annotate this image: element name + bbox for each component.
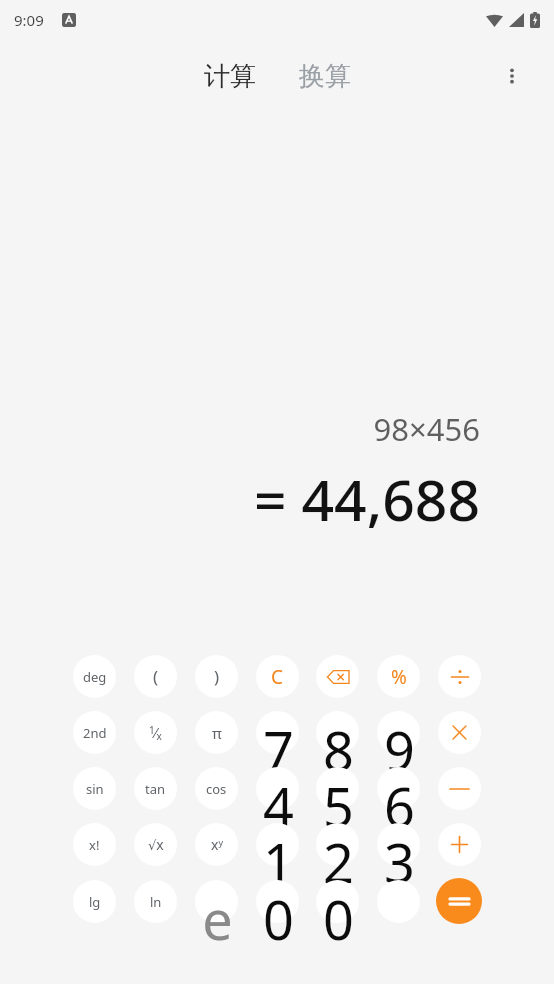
staticText: 5: [323, 769, 354, 843]
staticText: π: [212, 723, 222, 743]
button[interactable]: [377, 880, 420, 923]
staticText: 2nd: [83, 724, 107, 742]
staticText: 3: [384, 825, 415, 899]
button[interactable]: Backspace: [316, 655, 359, 698]
staticText: 计算: [204, 60, 256, 93]
staticText: 9:09: [14, 10, 44, 30]
staticText: cos: [206, 780, 227, 798]
button[interactable]: Clear: [256, 655, 299, 698]
button[interactable]: deg: [73, 655, 116, 698]
staticText: 2: [323, 825, 354, 899]
button[interactable]: Plus: [438, 823, 481, 866]
staticText: x!: [89, 836, 100, 854]
staticText: 9: [384, 713, 415, 787]
staticText: 4: [263, 769, 294, 843]
button[interactable]: Minus: [438, 767, 481, 810]
staticText: e: [202, 882, 233, 956]
button[interactable]: One over x: [134, 711, 177, 754]
staticText: 换算: [299, 60, 351, 93]
button[interactable]: Pi: [195, 711, 238, 754]
staticText: lg: [89, 893, 101, 911]
button[interactable]: [256, 823, 299, 866]
staticText: 1: [263, 825, 294, 899]
staticText: xy: [211, 835, 223, 854]
button[interactable]: Open parenthesis: [134, 655, 177, 698]
button[interactable]: [377, 823, 420, 866]
staticText: 6: [384, 769, 415, 843]
button[interactable]: 换算: [293, 56, 357, 97]
button[interactable]: tan: [134, 767, 177, 810]
staticText: √x: [148, 835, 164, 854]
staticText: %: [391, 664, 407, 690]
staticText: 0: [263, 882, 294, 956]
button[interactable]: [195, 880, 238, 923]
button[interactable]: [377, 711, 420, 754]
button[interactable]: Close parenthesis: [195, 655, 238, 698]
button[interactable]: Equals: [436, 878, 482, 924]
button[interactable]: [256, 711, 299, 754]
staticText: sin: [86, 780, 104, 798]
button[interactable]: [316, 823, 359, 866]
staticText: 98×456: [373, 408, 480, 450]
staticText: 0: [323, 882, 354, 956]
button[interactable]: Square root: [134, 823, 177, 866]
button[interactable]: [256, 767, 299, 810]
button[interactable]: Multiply: [438, 711, 481, 754]
staticText: 1⁄x: [149, 723, 162, 743]
button[interactable]: ln: [134, 880, 177, 923]
button[interactable]: [316, 880, 359, 923]
button[interactable]: cos: [195, 767, 238, 810]
button[interactable]: Percent: [377, 655, 420, 698]
button[interactable]: 计算: [198, 56, 262, 97]
staticText: ): [214, 665, 220, 688]
button[interactable]: [256, 880, 299, 923]
button[interactable]: [377, 767, 420, 810]
button[interactable]: [316, 711, 359, 754]
button[interactable]: More options: [490, 54, 534, 98]
button[interactable]: sin: [73, 767, 116, 810]
staticText: 8: [323, 713, 354, 787]
button[interactable]: 2nd: [73, 711, 116, 754]
staticText: 7: [263, 713, 294, 787]
button[interactable]: lg: [73, 880, 116, 923]
staticText: ln: [150, 893, 162, 911]
button[interactable]: Divide: [438, 655, 481, 698]
staticText: (: [153, 665, 159, 688]
button[interactable]: x to the power y: [195, 823, 238, 866]
staticText: = 44,688: [253, 460, 480, 538]
staticText: tan: [145, 780, 166, 798]
staticText: deg: [83, 668, 107, 686]
button[interactable]: x!: [73, 823, 116, 866]
staticText: C: [271, 664, 284, 690]
button[interactable]: [316, 767, 359, 810]
